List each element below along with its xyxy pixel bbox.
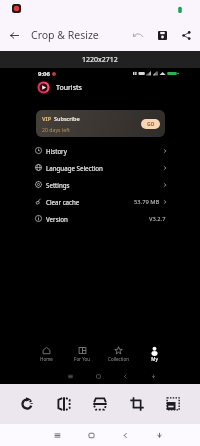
staticText: My [151,356,158,362]
staticText: 53.79 MB [134,198,160,206]
button[interactable]: Language Selection [29,159,172,176]
button[interactable]: Save [150,23,174,47]
staticText: For You [74,356,90,362]
staticText: Settings [46,181,70,189]
button[interactable]: Rotate [13,390,41,418]
staticText: GO [147,121,155,128]
button[interactable]: VIP [36,110,165,137]
staticText: V3.2.7 [149,215,166,223]
button[interactable]: Version [29,210,172,227]
button[interactable]: Aspect ratio [159,390,187,418]
button[interactable]: Home [83,427,99,443]
button[interactable]: Download [151,427,167,443]
button[interactable]: Flip horizontal [50,390,78,418]
staticText: 9:06 [38,70,50,78]
button[interactable]: Back [5,26,23,44]
staticText: Subscribe [54,115,80,122]
button[interactable]: Flip vertical [86,390,114,418]
staticText: Version [46,215,68,223]
button[interactable]: Collection [100,346,136,362]
staticText: Tourists [56,83,82,93]
button[interactable]: For You [64,346,100,362]
button[interactable]: Settings [29,176,172,193]
staticText: 20 days left [42,126,70,133]
staticText: Clear cache [46,198,80,206]
staticText: 1220x2712 [82,55,118,65]
staticText: Collection [108,356,129,362]
staticText: Language Selection [46,164,103,172]
staticText: VIP [42,115,52,122]
staticText: History [46,147,67,155]
button[interactable]: Crop [123,390,151,418]
button[interactable]: Back [117,427,133,443]
button[interactable]: Menu [49,427,65,443]
button[interactable]: GO [141,119,160,129]
staticText: Home [40,356,53,362]
button[interactable]: My [136,346,172,362]
button[interactable]: Clear cache [29,193,172,210]
button[interactable]: Home [29,346,64,362]
button[interactable]: History [29,142,172,159]
button[interactable]: Undo [126,23,150,47]
button[interactable]: Share [174,23,198,47]
staticText: Crop & Resize [31,28,99,42]
